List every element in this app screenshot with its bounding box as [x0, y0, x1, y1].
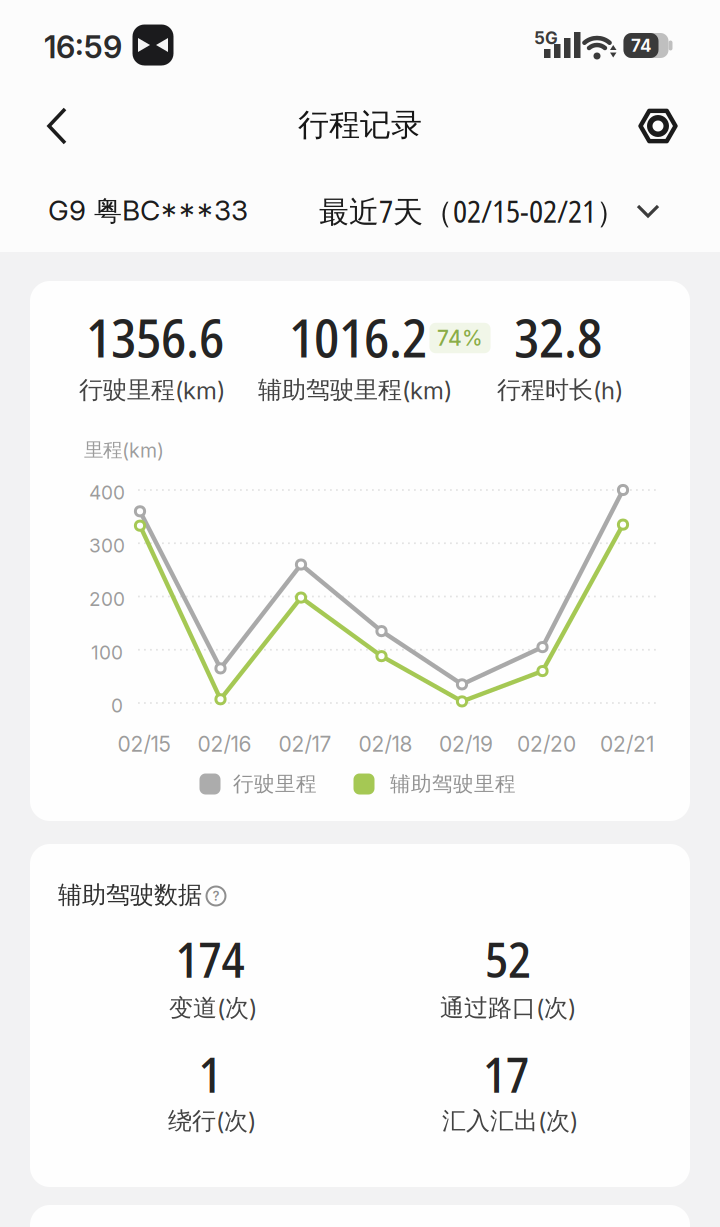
staticText: 174	[175, 926, 244, 992]
staticText: 通过路口(次)	[440, 993, 576, 1023]
staticText: 5G	[534, 28, 558, 48]
button[interactable]: 设置	[634, 102, 682, 150]
staticText: 行驶里程(km)	[79, 375, 225, 405]
staticText: 行程时长(h)	[497, 375, 623, 405]
staticText: ?	[212, 888, 219, 904]
staticText: 汇入汇出(次)	[442, 1106, 578, 1136]
button[interactable]: G9 粤BC***33	[48, 193, 248, 229]
staticText: G9 粤BC***33	[48, 193, 248, 229]
staticText: 辅助驾驶里程	[390, 771, 516, 797]
staticText: 辅助驾驶里程(km)	[258, 375, 452, 405]
staticText: 0	[111, 694, 123, 717]
button[interactable]: 最近7天（02/15-02/21）	[319, 191, 661, 231]
staticText: 02/21	[600, 731, 654, 757]
staticText: 02/19	[439, 731, 493, 757]
staticText: 74%	[437, 325, 483, 351]
staticText: 1016.2	[289, 301, 427, 373]
button[interactable]: 辅助驾驶数据说明	[205, 885, 227, 907]
staticText: 行驶里程	[233, 771, 317, 797]
staticText: 100	[91, 641, 123, 664]
staticText: 17	[483, 1041, 529, 1107]
staticText: 辅助驾驶数据	[58, 880, 202, 910]
staticText: 32.8	[514, 301, 602, 373]
staticText: 1	[198, 1041, 221, 1107]
staticText: 16:59	[44, 28, 122, 66]
staticText: 里程(km)	[84, 438, 164, 462]
staticText: 02/16	[197, 731, 251, 757]
staticText: 52	[485, 926, 531, 992]
staticText: 变道(次)	[169, 993, 257, 1023]
staticText: 400	[89, 481, 125, 504]
staticText: 行程记录	[298, 105, 422, 145]
staticText: 最近7天（02/15-02/21）	[319, 191, 626, 231]
staticText: 02/15	[117, 731, 170, 757]
button[interactable]: 返回	[35, 104, 79, 148]
staticText: 200	[89, 587, 125, 610]
staticText: 绕行(次)	[168, 1106, 256, 1136]
staticText: 74	[631, 35, 651, 56]
staticText: 02/17	[278, 731, 331, 757]
staticText: 300	[89, 534, 125, 557]
staticText: 1356.6	[86, 301, 224, 373]
staticText: 02/20	[517, 731, 576, 757]
staticText: 02/18	[358, 731, 412, 757]
